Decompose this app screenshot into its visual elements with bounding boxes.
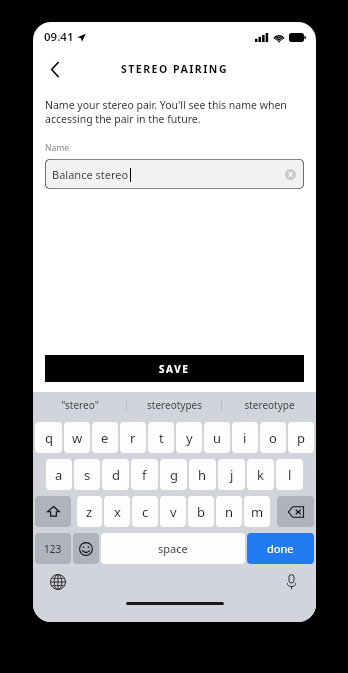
button[interactable]: a [46,459,72,490]
staticText: n [225,503,234,521]
staticText: e [101,429,109,447]
button[interactable]: d [102,459,129,490]
button[interactable]: stereotype [222,392,316,418]
button[interactable]: stereotypes [127,392,221,418]
button[interactable]: b [188,496,214,527]
staticText: x [114,503,121,521]
button[interactable]: j [218,459,245,490]
staticText: Balance stereo [52,167,129,182]
staticText: stereotypes [147,398,202,412]
staticText: w [72,429,83,447]
staticText: 123 [44,542,62,556]
button[interactable]: m [244,496,270,527]
button[interactable]: p [288,422,314,453]
button[interactable]: t [148,422,174,453]
staticText: Name your stereo pair. You'll see this n… [45,98,304,126]
staticText: r [130,429,136,447]
button[interactable]: done [247,533,314,564]
staticText: l [288,466,292,484]
staticText: b [197,503,205,521]
button[interactable]: space [101,533,245,564]
staticText: o [269,429,277,447]
staticText: SAVE [159,362,190,376]
staticText: u [213,429,222,447]
button[interactable]: Balance stereo [45,159,304,189]
staticText: d [112,466,120,484]
button[interactable]: x [104,496,130,527]
button[interactable]: n [216,496,242,527]
staticText: "stereo" [61,398,99,412]
button[interactable]: s [74,459,100,490]
staticText: a [55,466,63,484]
staticText: c [142,503,149,521]
button[interactable]: v [160,496,186,527]
staticText: h [198,466,207,484]
button[interactable]: h [189,459,216,490]
button[interactable]: 123 [35,533,71,564]
staticText: j [230,466,234,484]
button[interactable]: "stereo" [33,392,126,418]
button[interactable]: e [92,422,118,453]
button[interactable]: Change keyboard language [47,571,69,593]
staticText: STEREO PAIRING [121,62,228,76]
staticText: s [84,466,91,484]
button[interactable]: Back [41,55,69,83]
button[interactable]: w [64,422,90,453]
staticText: m [251,503,264,521]
button[interactable]: f [131,459,158,490]
staticText: space [158,541,188,556]
button[interactable]: k [247,459,274,490]
button[interactable]: g [160,459,187,490]
staticText: i [243,429,247,447]
button[interactable]: c [132,496,158,527]
button[interactable]: SAVE [45,355,304,382]
button[interactable]: o [260,422,286,453]
staticText: done [267,541,294,556]
button[interactable]: y [176,422,202,453]
staticText: g [170,466,178,484]
button[interactable]: i [232,422,258,453]
staticText: f [142,466,147,484]
button[interactable]: Dictate [280,571,302,593]
staticText: v [170,503,177,521]
button[interactable]: Clear text [282,166,298,182]
staticText: y [186,429,193,447]
button[interactable]: z [77,496,102,527]
staticText: k [257,466,264,484]
button[interactable]: Shift [35,496,71,527]
staticText: Name [45,142,69,154]
button[interactable]: Emoji [73,533,99,564]
button[interactable]: l [276,459,303,490]
button[interactable]: u [204,422,230,453]
button[interactable]: q [35,422,62,453]
staticText: q [45,429,53,447]
staticText: p [297,429,305,447]
staticText: stereotype [244,398,295,412]
staticText: t [159,429,164,447]
staticText: 09.41 [44,29,74,45]
button[interactable]: Backspace [277,496,314,527]
staticText: z [86,503,93,521]
button[interactable]: r [120,422,146,453]
